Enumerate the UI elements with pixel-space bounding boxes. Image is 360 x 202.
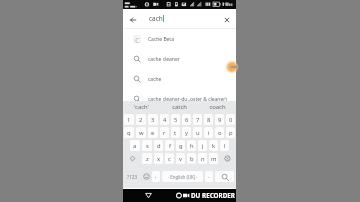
staticText: cache cleaner-du..oster & cleaner)	[148, 96, 227, 103]
button[interactable]	[215, 171, 234, 182]
staticText: 3	[151, 116, 155, 124]
button[interactable]: coach	[198, 101, 236, 113]
button[interactable]: u	[193, 127, 202, 138]
button[interactable]: o	[215, 127, 224, 138]
staticText: n	[201, 155, 205, 163]
staticText: 1	[127, 116, 131, 124]
staticText: catch	[172, 103, 187, 111]
staticText: f	[169, 142, 171, 150]
button[interactable]: h	[187, 140, 196, 151]
staticText: a	[133, 142, 137, 150]
button[interactable]: Screen recorder	[225, 60, 239, 74]
staticText: l	[224, 142, 226, 150]
staticText: 0	[229, 116, 233, 124]
button[interactable]: 6	[182, 114, 191, 125]
staticText: 4	[163, 116, 167, 124]
staticText: q	[127, 129, 131, 137]
staticText: cache	[148, 76, 162, 83]
button[interactable]: k	[209, 140, 218, 151]
button[interactable]: ?123	[125, 170, 140, 183]
staticText: i	[208, 129, 210, 137]
button[interactable]: ,	[152, 171, 160, 182]
button[interactable]: p	[226, 127, 235, 138]
button[interactable]: Back	[123, 9, 236, 28]
staticText: DU RECORDER	[191, 191, 235, 200]
button[interactable]: g	[176, 140, 185, 151]
staticText: 6	[185, 116, 189, 124]
staticText: 5	[174, 116, 178, 124]
button[interactable]: 8	[204, 114, 213, 125]
staticText: x	[157, 155, 161, 163]
button[interactable]: · English (UK) ·	[162, 171, 203, 182]
button[interactable]: 0	[226, 114, 235, 125]
staticText: C	[135, 35, 140, 43]
button[interactable]: y	[182, 127, 191, 138]
staticText: ,	[155, 172, 157, 180]
staticText: coach	[209, 103, 226, 111]
button[interactable]: 5	[171, 114, 180, 125]
button[interactable]: i	[204, 127, 213, 138]
button[interactable]: Backspace	[220, 153, 235, 164]
staticText: d	[157, 142, 161, 150]
button[interactable]: c	[165, 153, 174, 164]
button[interactable]: Shift	[124, 153, 140, 164]
button[interactable]: 3	[148, 114, 158, 125]
button[interactable]: a	[130, 140, 140, 151]
staticText: ?123	[127, 174, 138, 180]
button[interactable]: v	[176, 153, 185, 164]
staticText: b	[190, 155, 194, 163]
button[interactable]: t	[171, 127, 180, 138]
staticText: 'cach'	[134, 103, 149, 111]
button[interactable]: 9	[215, 114, 224, 125]
staticText: k	[212, 142, 216, 150]
button[interactable]: m	[209, 153, 218, 164]
staticText: c	[168, 155, 171, 163]
button[interactable]: w	[136, 127, 146, 138]
button[interactable]: cache cleaner-du..oster & cleaner)	[123, 89, 236, 109]
button[interactable]: z	[142, 153, 152, 164]
button[interactable]: f	[165, 140, 174, 151]
staticText: 9	[218, 116, 222, 124]
staticText: t	[174, 129, 177, 137]
button[interactable]: 2	[136, 114, 146, 125]
button[interactable]: e	[148, 127, 158, 138]
staticText: g	[179, 142, 183, 150]
button[interactable]: l	[220, 140, 229, 151]
staticText: h	[190, 142, 194, 150]
staticText: w	[139, 129, 144, 137]
staticText: 8	[207, 116, 211, 124]
button[interactable]: Back	[127, 13, 139, 25]
button[interactable]: cache cleaner	[123, 49, 236, 69]
staticText: s	[146, 142, 149, 150]
staticText: · English (UK) ·	[168, 174, 198, 180]
staticText: Cache Beta	[148, 36, 174, 43]
staticText: e	[151, 129, 155, 137]
button[interactable]: cache	[123, 69, 236, 89]
button[interactable]: s	[142, 140, 152, 151]
button[interactable]: .	[205, 171, 213, 182]
button[interactable]: r	[160, 127, 169, 138]
button[interactable]: 7	[193, 114, 202, 125]
staticText: p	[229, 129, 233, 137]
button[interactable]: Clear search	[221, 13, 233, 25]
button[interactable]: n	[198, 153, 207, 164]
button[interactable]: C	[123, 29, 236, 49]
button[interactable]: catch	[160, 101, 198, 113]
staticText: cache cleaner	[148, 56, 180, 63]
button[interactable]: 1	[124, 114, 134, 125]
button[interactable]: b	[187, 153, 196, 164]
button[interactable]: q	[124, 127, 134, 138]
button[interactable]: Back	[145, 192, 152, 199]
staticText: cach	[149, 14, 163, 23]
staticText: .	[208, 172, 210, 180]
button[interactable]: j	[198, 140, 207, 151]
button[interactable]: Emoji	[140, 170, 152, 183]
button[interactable]: x	[154, 153, 163, 164]
staticText: v	[179, 155, 182, 163]
other: Search	[215, 171, 234, 182]
staticText: r	[163, 129, 166, 137]
button[interactable]: 4	[160, 114, 169, 125]
staticText: j	[202, 142, 204, 150]
button[interactable]: 'cach'	[123, 101, 160, 113]
button[interactable]: d	[154, 140, 163, 151]
